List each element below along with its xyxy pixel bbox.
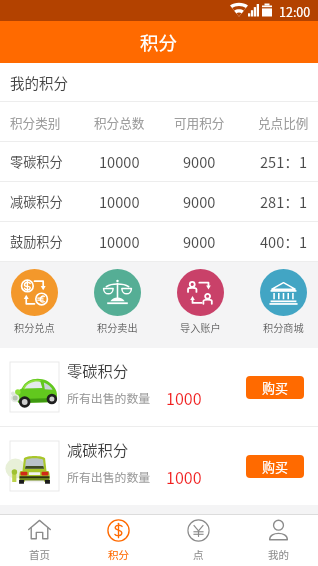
staticText: 1000 xyxy=(166,386,202,409)
staticText: 10000 xyxy=(99,231,140,252)
button[interactable]: 积分 xyxy=(79,515,158,566)
staticText: 12:00 xyxy=(279,2,311,20)
button[interactable]: 导入账户 xyxy=(177,269,224,335)
staticText: 购买 xyxy=(262,457,289,476)
staticText: 积分类别 xyxy=(10,113,61,131)
staticText: 所有出售的数量 xyxy=(67,389,151,406)
staticText: 积分商城 xyxy=(263,320,304,335)
staticText: 我的积分 xyxy=(10,72,68,93)
staticText: 积分总数 xyxy=(94,113,145,131)
staticText: 零碳积分 xyxy=(10,152,63,171)
staticText: 所有出售的数量 xyxy=(67,468,151,485)
button[interactable]: 购买 xyxy=(246,376,304,399)
staticText: 减碳积分 xyxy=(10,192,63,211)
staticText: 点 xyxy=(193,547,204,562)
button[interactable]: 我的 xyxy=(238,515,318,566)
staticText: 积分兑点 xyxy=(14,320,55,335)
staticText: 兑点比例 xyxy=(258,113,309,131)
staticText: 积分 xyxy=(140,29,178,56)
button[interactable]: 点 xyxy=(158,515,238,566)
staticText: 9000 xyxy=(183,231,216,252)
button[interactable]: 零碳积分 xyxy=(0,348,318,426)
staticText: 1000 xyxy=(166,465,202,488)
staticText: 10000 xyxy=(99,191,140,212)
staticText: 281：1 xyxy=(260,191,307,212)
staticText: 10000 xyxy=(99,151,140,172)
staticText: 可用积分 xyxy=(174,113,225,131)
staticText: 鼓励积分 xyxy=(10,232,63,251)
staticText: 积分卖出 xyxy=(97,320,138,335)
staticText: 导入账户 xyxy=(180,320,221,335)
staticText: 9000 xyxy=(183,191,216,212)
staticText: 零碳积分 xyxy=(67,359,129,381)
button[interactable]: 购买 xyxy=(246,455,304,478)
staticText: 251：1 xyxy=(260,151,307,172)
staticText: 积分 xyxy=(108,547,129,562)
staticText: 我的 xyxy=(268,547,289,562)
staticText: 400：1 xyxy=(260,231,307,252)
staticText: 首页 xyxy=(29,547,50,562)
staticText: 减碳积分 xyxy=(67,438,129,460)
button[interactable]: 首页 xyxy=(0,515,79,566)
staticText: 购买 xyxy=(262,378,289,397)
button[interactable]: 积分商城 xyxy=(260,269,307,335)
staticText: 9000 xyxy=(183,151,216,172)
button[interactable]: 减碳积分 xyxy=(0,427,318,505)
button[interactable]: 积分兑点 xyxy=(11,269,58,335)
button[interactable]: 积分卖出 xyxy=(94,269,141,335)
